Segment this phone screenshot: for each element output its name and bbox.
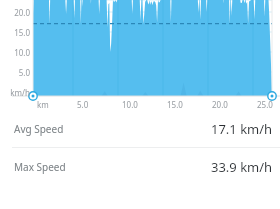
- staticText: 5.0: [0, 67, 30, 78]
- staticText: 20.0: [212, 99, 228, 110]
- staticText: km: [37, 99, 49, 110]
- button[interactable]: Max Speed: [0, 148, 280, 185]
- staticText: Max Speed: [14, 160, 66, 174]
- staticText: 15.0: [0, 27, 30, 38]
- staticText: 33.9 km/h: [211, 158, 273, 176]
- staticText: 5.0: [77, 99, 89, 110]
- staticText: km/h: [0, 87, 30, 98]
- staticText: 25.0: [257, 99, 273, 110]
- staticText: 17.1 km/h: [211, 120, 273, 138]
- staticText: 10.0: [122, 99, 138, 110]
- staticText: 10.0: [0, 47, 30, 58]
- staticText: 15.0: [167, 99, 183, 110]
- button[interactable]: Avg Speed: [0, 110, 280, 147]
- staticText: Avg Speed: [14, 122, 64, 136]
- staticText: 20.0: [0, 7, 30, 18]
